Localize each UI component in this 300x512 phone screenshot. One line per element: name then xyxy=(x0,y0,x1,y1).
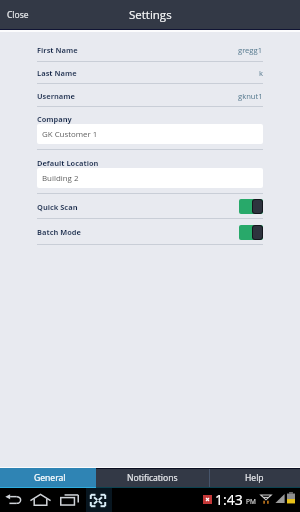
button[interactable]: Last Name xyxy=(0,62,300,84)
staticText: Batch Mode xyxy=(37,227,81,237)
button[interactable]: Recent apps xyxy=(60,494,79,506)
staticText: Building 2 xyxy=(42,173,79,184)
staticText: Default Location xyxy=(37,158,99,168)
staticText: Settings xyxy=(129,7,172,23)
button[interactable]: Notifications xyxy=(96,468,209,487)
button[interactable]: Default Location xyxy=(0,150,300,194)
button[interactable]: Username xyxy=(0,84,300,107)
staticText: Close xyxy=(7,9,29,21)
staticText: Quick Scan xyxy=(37,202,78,212)
button[interactable]: Screenshot xyxy=(89,493,107,508)
staticText: Notifications xyxy=(127,472,178,484)
button[interactable]: Home xyxy=(30,493,51,506)
button[interactable]: Help xyxy=(209,468,300,487)
staticText: gknut1 xyxy=(238,91,263,101)
staticText: gregg1 xyxy=(238,45,263,55)
button[interactable]: Close xyxy=(0,0,39,29)
staticText: k xyxy=(259,68,263,78)
button[interactable]: General xyxy=(0,468,96,487)
button[interactable]: Quick Scan xyxy=(0,194,300,219)
button[interactable]: Back xyxy=(5,494,22,506)
staticText: General xyxy=(34,472,66,484)
staticText: GK Customer 1 xyxy=(42,129,98,140)
staticText: Help xyxy=(245,472,264,484)
staticText: PM xyxy=(246,497,256,506)
button[interactable]: Batch Mode xyxy=(0,219,300,245)
staticText: Last Name xyxy=(37,68,77,78)
staticText: First Name xyxy=(37,45,78,55)
button[interactable]: Company xyxy=(0,107,300,150)
staticText: Company xyxy=(37,114,72,124)
staticText: Username xyxy=(37,91,75,101)
staticText: 1:43 xyxy=(215,490,243,509)
button[interactable]: First Name xyxy=(0,37,300,62)
